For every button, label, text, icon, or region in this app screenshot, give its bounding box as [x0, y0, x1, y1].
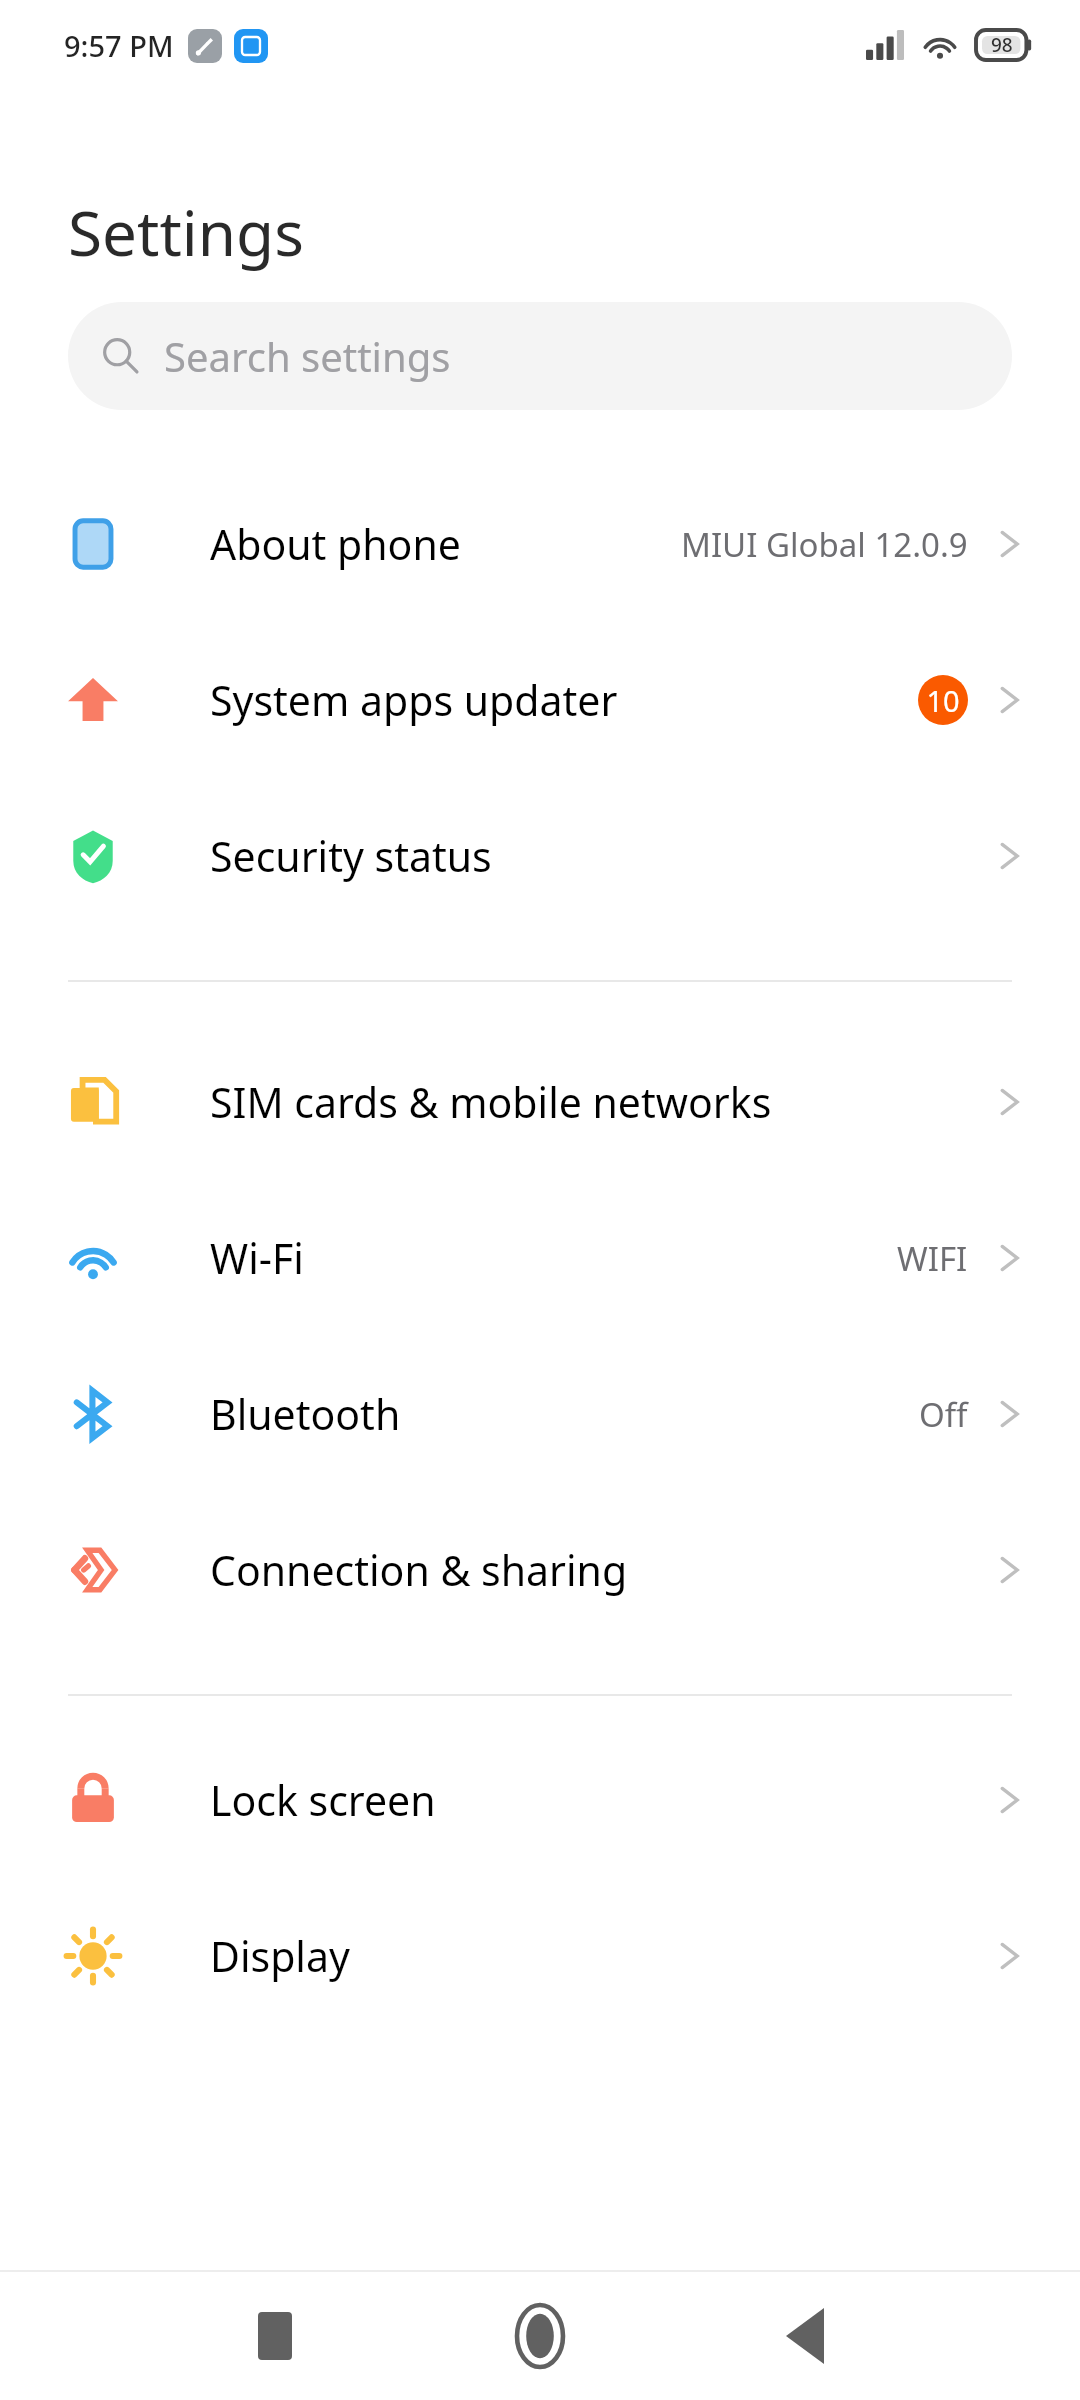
button[interactable]: Home [492, 2288, 588, 2384]
button[interactable]: About phone [0, 466, 1080, 622]
staticText: WIFI [897, 1236, 968, 1281]
button[interactable]: Bluetooth [0, 1336, 1080, 1492]
button[interactable]: Recent apps [227, 2288, 323, 2384]
button[interactable]: SIM cards & mobile networks [0, 1024, 1080, 1180]
staticText: Bluetooth [210, 1386, 401, 1442]
staticText: About phone [210, 516, 461, 572]
staticText: System apps updater [210, 672, 618, 728]
button[interactable]: System apps updater [0, 622, 1080, 778]
button[interactable]: Security status [0, 778, 1080, 934]
staticText: 98 [991, 32, 1013, 58]
button[interactable]: Back [757, 2288, 853, 2384]
staticText: Lock screen [210, 1772, 436, 1828]
button[interactable]: Wi-Fi [0, 1180, 1080, 1336]
staticText: Connection & sharing [210, 1542, 628, 1598]
staticText: Off [919, 1392, 968, 1437]
button[interactable]: Lock screen [0, 1722, 1080, 1878]
staticText: Display [210, 1928, 350, 1984]
staticText: 10 [926, 681, 960, 720]
staticText: SIM cards & mobile networks [210, 1074, 772, 1130]
staticText: Settings [68, 190, 304, 274]
staticText: 9:57 PM [64, 26, 174, 65]
staticText: Wi-Fi [210, 1230, 304, 1286]
button[interactable]: Connection & sharing [0, 1492, 1080, 1648]
staticText: Security status [210, 828, 492, 884]
button[interactable]: Search settings [68, 302, 1012, 410]
staticText: Search settings [164, 329, 451, 383]
staticText: MIUI Global 12.0.9 [681, 522, 968, 567]
button[interactable]: Display [0, 1878, 1080, 2034]
